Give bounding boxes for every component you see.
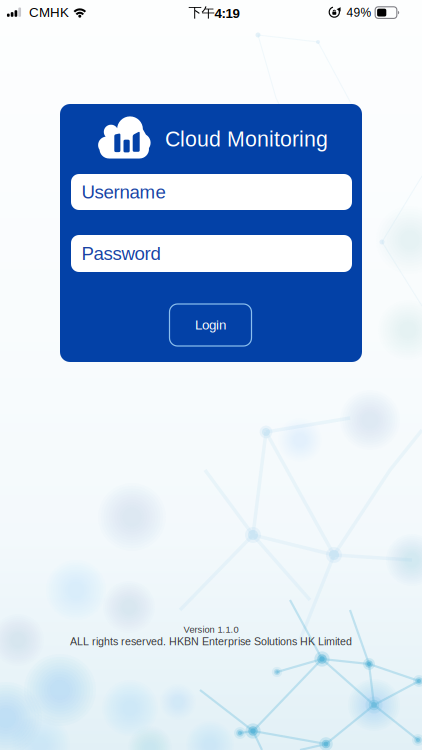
staticText: 下午4:19 — [188, 4, 239, 21]
staticText: Version 1.1.0 — [183, 624, 238, 635]
button[interactable]: Username — [71, 174, 352, 210]
staticText: Password — [81, 243, 160, 264]
button[interactable]: Login — [169, 304, 251, 346]
staticText: Login — [195, 318, 226, 332]
staticText: CMHK — [29, 5, 69, 20]
staticText: Username — [81, 182, 165, 202]
staticText: 49% — [346, 6, 371, 19]
staticText: ALL rights reserved. HKBN Enterprise Sol… — [70, 636, 352, 647]
staticText: Cloud Monitoring — [165, 127, 328, 151]
button[interactable]: Password — [71, 235, 352, 272]
